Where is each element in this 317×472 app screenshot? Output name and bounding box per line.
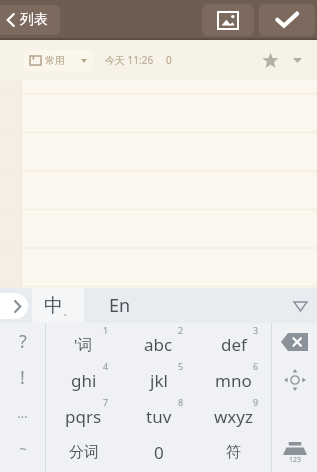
button[interactable]: Cursor keys — [272, 361, 317, 398]
staticText: 6 — [253, 360, 259, 372]
staticText: 常用 — [45, 54, 65, 67]
staticText: 1 — [103, 324, 109, 336]
staticText: 5 — [178, 360, 184, 372]
staticText: 0 — [154, 441, 164, 464]
button[interactable]: Expand — [0, 293, 28, 319]
button[interactable]: 符 — [196, 431, 271, 467]
button[interactable]: 2 — [121, 323, 196, 359]
staticText: 7 — [103, 396, 109, 408]
staticText: En — [109, 293, 131, 318]
button[interactable]: En — [84, 288, 156, 323]
staticText: def — [221, 333, 247, 356]
staticText: 符 — [226, 443, 241, 462]
button[interactable]: ~ — [0, 431, 45, 467]
staticText: 123 — [289, 455, 302, 465]
staticText: tuv — [146, 405, 172, 428]
staticText: jkl — [150, 369, 168, 392]
button[interactable]: 4 — [46, 359, 121, 395]
button[interactable]: 5 — [121, 359, 196, 395]
staticText: 8 — [178, 396, 184, 408]
button[interactable]: Done — [259, 4, 315, 36]
button[interactable]: ? — [0, 323, 45, 359]
button[interactable]: 9 — [196, 395, 271, 431]
staticText: 、 — [63, 305, 73, 318]
staticText: 中 — [44, 294, 63, 318]
button[interactable]: 常用 — [24, 50, 93, 71]
staticText: ghi — [71, 369, 97, 392]
staticText: 4 — [103, 360, 109, 372]
button[interactable]: … — [0, 395, 45, 431]
staticText: wxyz — [214, 405, 254, 428]
staticText: 0 — [166, 53, 172, 67]
button[interactable]: 0 — [121, 431, 196, 467]
button[interactable]: 3 — [196, 323, 271, 359]
button[interactable]: Backspace — [272, 323, 317, 361]
staticText: mno — [215, 369, 252, 392]
button[interactable]: More options — [287, 50, 307, 70]
button[interactable]: 中 — [32, 288, 84, 323]
button[interactable]: Hide toolbar — [283, 289, 317, 323]
staticText: abc — [144, 333, 173, 356]
button[interactable]: Favorite — [257, 47, 283, 73]
staticText: '词 — [74, 334, 93, 354]
button[interactable]: ! — [0, 359, 45, 395]
button[interactable]: 6 — [196, 359, 271, 395]
staticText: 分词 — [69, 443, 99, 462]
staticText: 今天 11:26 — [105, 53, 154, 67]
button[interactable]: 7 — [46, 395, 121, 431]
button[interactable]: 8 — [121, 395, 196, 431]
staticText: 3 — [253, 324, 259, 336]
button[interactable]: Hide keyboard — [272, 435, 317, 472]
staticText: 2 — [178, 324, 184, 336]
button[interactable]: 1 — [46, 323, 121, 359]
staticText: ~ — [19, 440, 27, 458]
staticText: pqrs — [65, 405, 102, 428]
button[interactable]: Insert image — [202, 4, 254, 36]
staticText: ? — [19, 329, 27, 354]
staticText: … — [17, 404, 28, 422]
staticText: 列表 — [20, 11, 48, 29]
button[interactable]: 分词 — [46, 431, 121, 467]
staticText: 9 — [253, 396, 259, 408]
button[interactable]: 列表 — [0, 5, 60, 35]
staticText: ! — [20, 365, 25, 390]
